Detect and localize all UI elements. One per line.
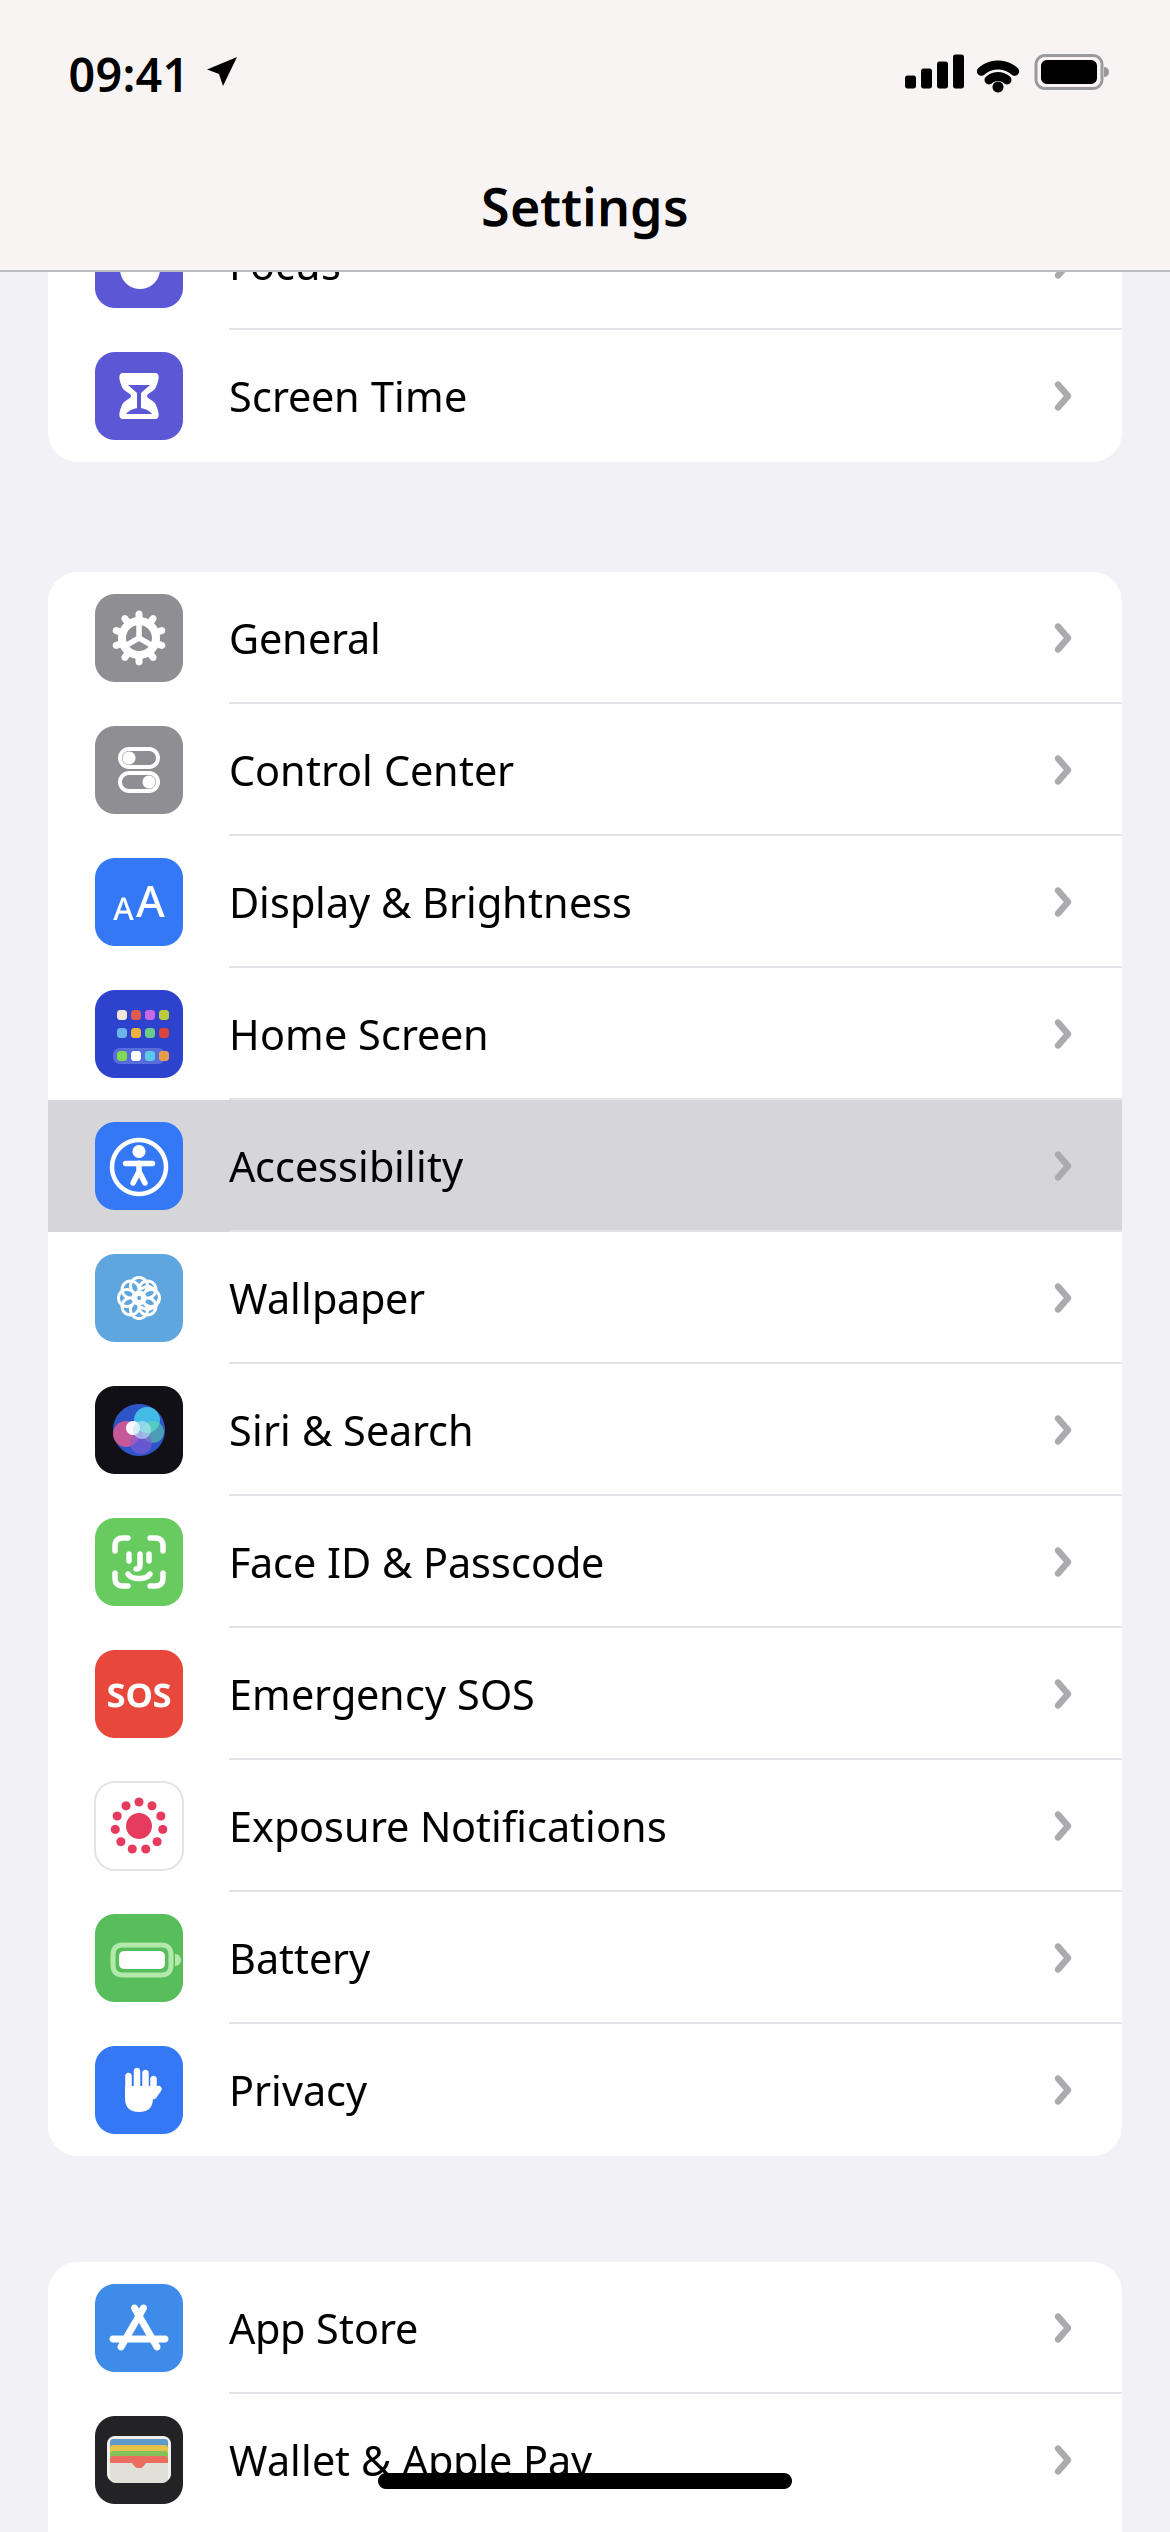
button[interactable]: Focus [48, 198, 1122, 330]
button[interactable]: Home Screen [48, 968, 1122, 1100]
staticText: General [229, 611, 381, 665]
button[interactable]: General [48, 572, 1122, 704]
staticText: App Store [229, 2301, 418, 2355]
staticText: A [113, 887, 134, 929]
button[interactable]: Accessibility [48, 1100, 1122, 1232]
staticText: Control Center [229, 743, 514, 797]
button[interactable]: App Store [48, 2262, 1122, 2394]
staticText: Wallpaper [229, 1271, 425, 1325]
staticText: Screen Time [229, 369, 467, 423]
button[interactable]: SOS [48, 1628, 1122, 1760]
staticText: Exposure Notifications [229, 1799, 667, 1853]
button[interactable]: Battery [48, 1892, 1122, 2024]
button[interactable]: Screen Time [48, 330, 1122, 462]
staticText: Face ID & Passcode [229, 1535, 604, 1589]
button[interactable]: Privacy [48, 2024, 1122, 2156]
staticText: Focus [229, 237, 341, 291]
staticText: Emergency SOS [229, 1667, 535, 1721]
button[interactable]: A [48, 836, 1122, 968]
staticText: SOS [106, 1671, 171, 1717]
staticText: Display & Brightness [229, 875, 632, 929]
staticText: Privacy [229, 2063, 367, 2117]
staticText: A [136, 871, 165, 929]
staticText: Wallet & Apple Pay [229, 2433, 592, 2487]
staticText: Home Screen [229, 1007, 489, 1061]
button[interactable]: Wallpaper [48, 1232, 1122, 1364]
button[interactable]: Siri & Search [48, 1364, 1122, 1496]
button[interactable]: Wallet & Apple Pay [48, 2394, 1122, 2526]
staticText: Settings [481, 171, 689, 241]
button[interactable]: Exposure Notifications [48, 1760, 1122, 1892]
button[interactable]: Face ID & Passcode [48, 1496, 1122, 1628]
staticText: Siri & Search [229, 1403, 474, 1457]
staticText: 09:41 [68, 43, 189, 105]
staticText: Accessibility [229, 1139, 463, 1193]
staticText: Battery [229, 1931, 370, 1985]
button[interactable]: Control Center [48, 704, 1122, 836]
